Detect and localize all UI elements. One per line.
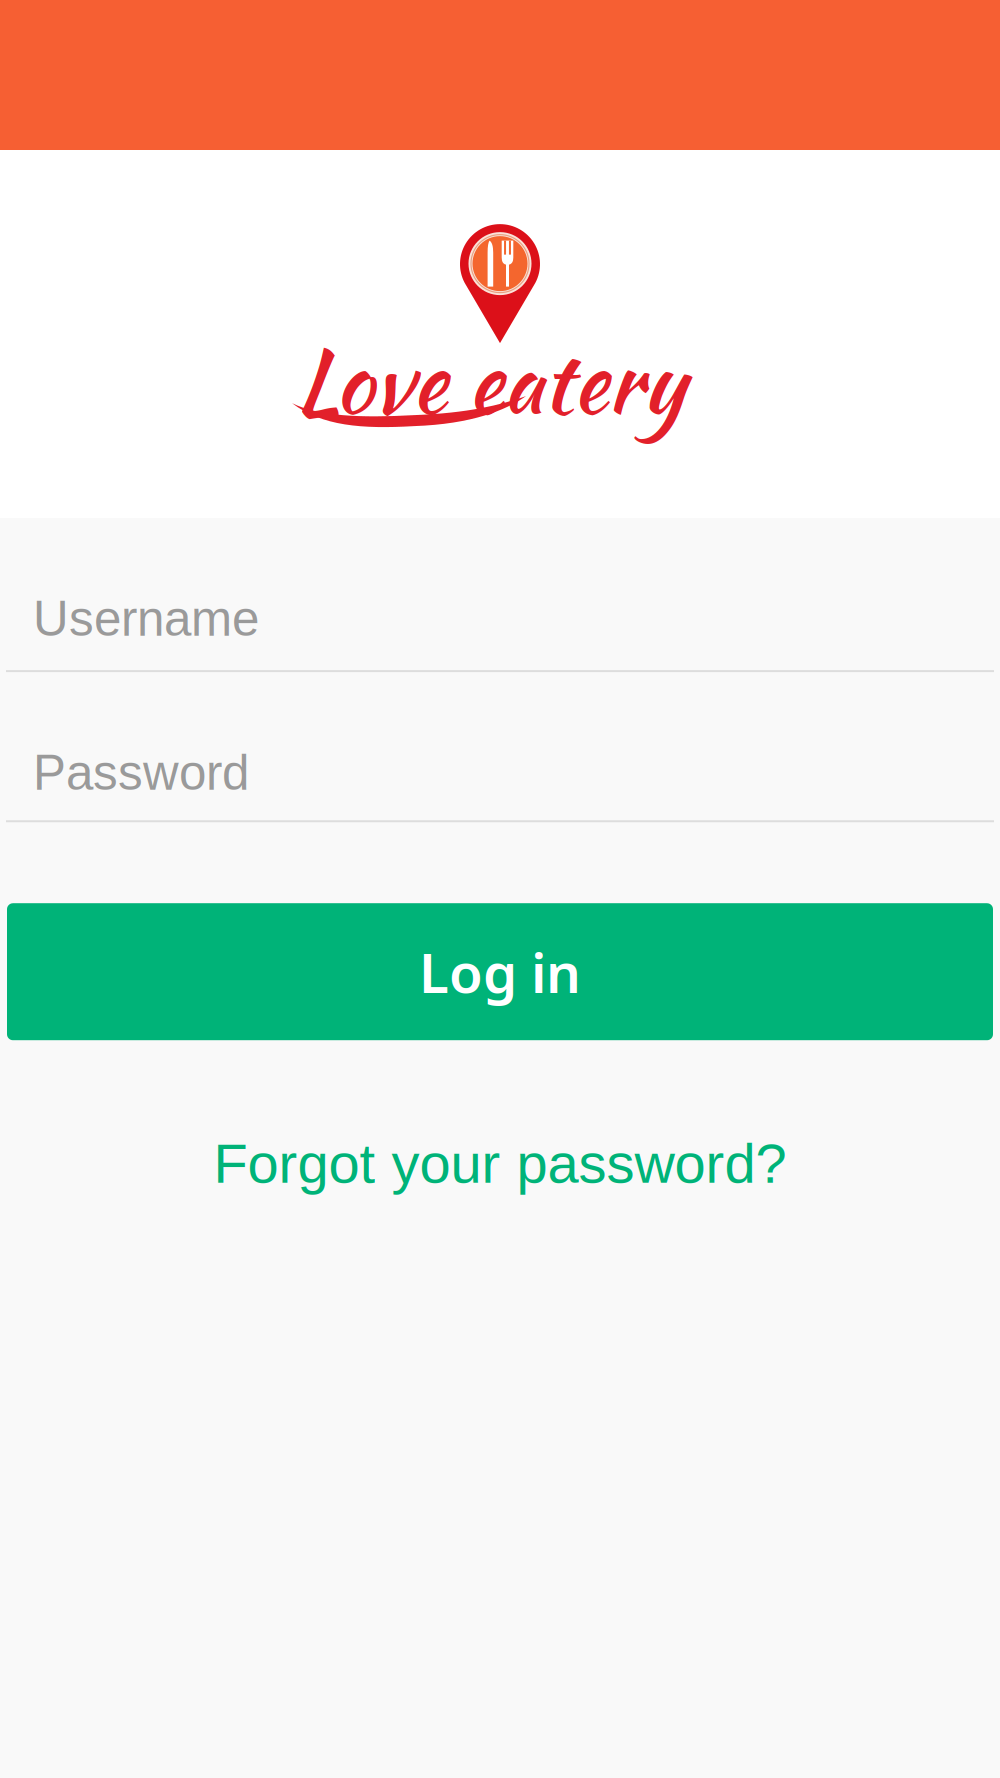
button[interactable]: Log in <box>7 903 993 1040</box>
staticText: Username <box>33 591 259 646</box>
button[interactable]: Password <box>0 745 1000 822</box>
staticText: Love eatery <box>295 318 684 444</box>
button[interactable]: Username <box>0 591 1000 672</box>
staticText: Password <box>33 745 249 800</box>
staticText: Log in <box>419 934 581 1009</box>
button[interactable]: Forgot your password? <box>0 1108 1000 1218</box>
staticText: Forgot your password? <box>213 1132 786 1194</box>
